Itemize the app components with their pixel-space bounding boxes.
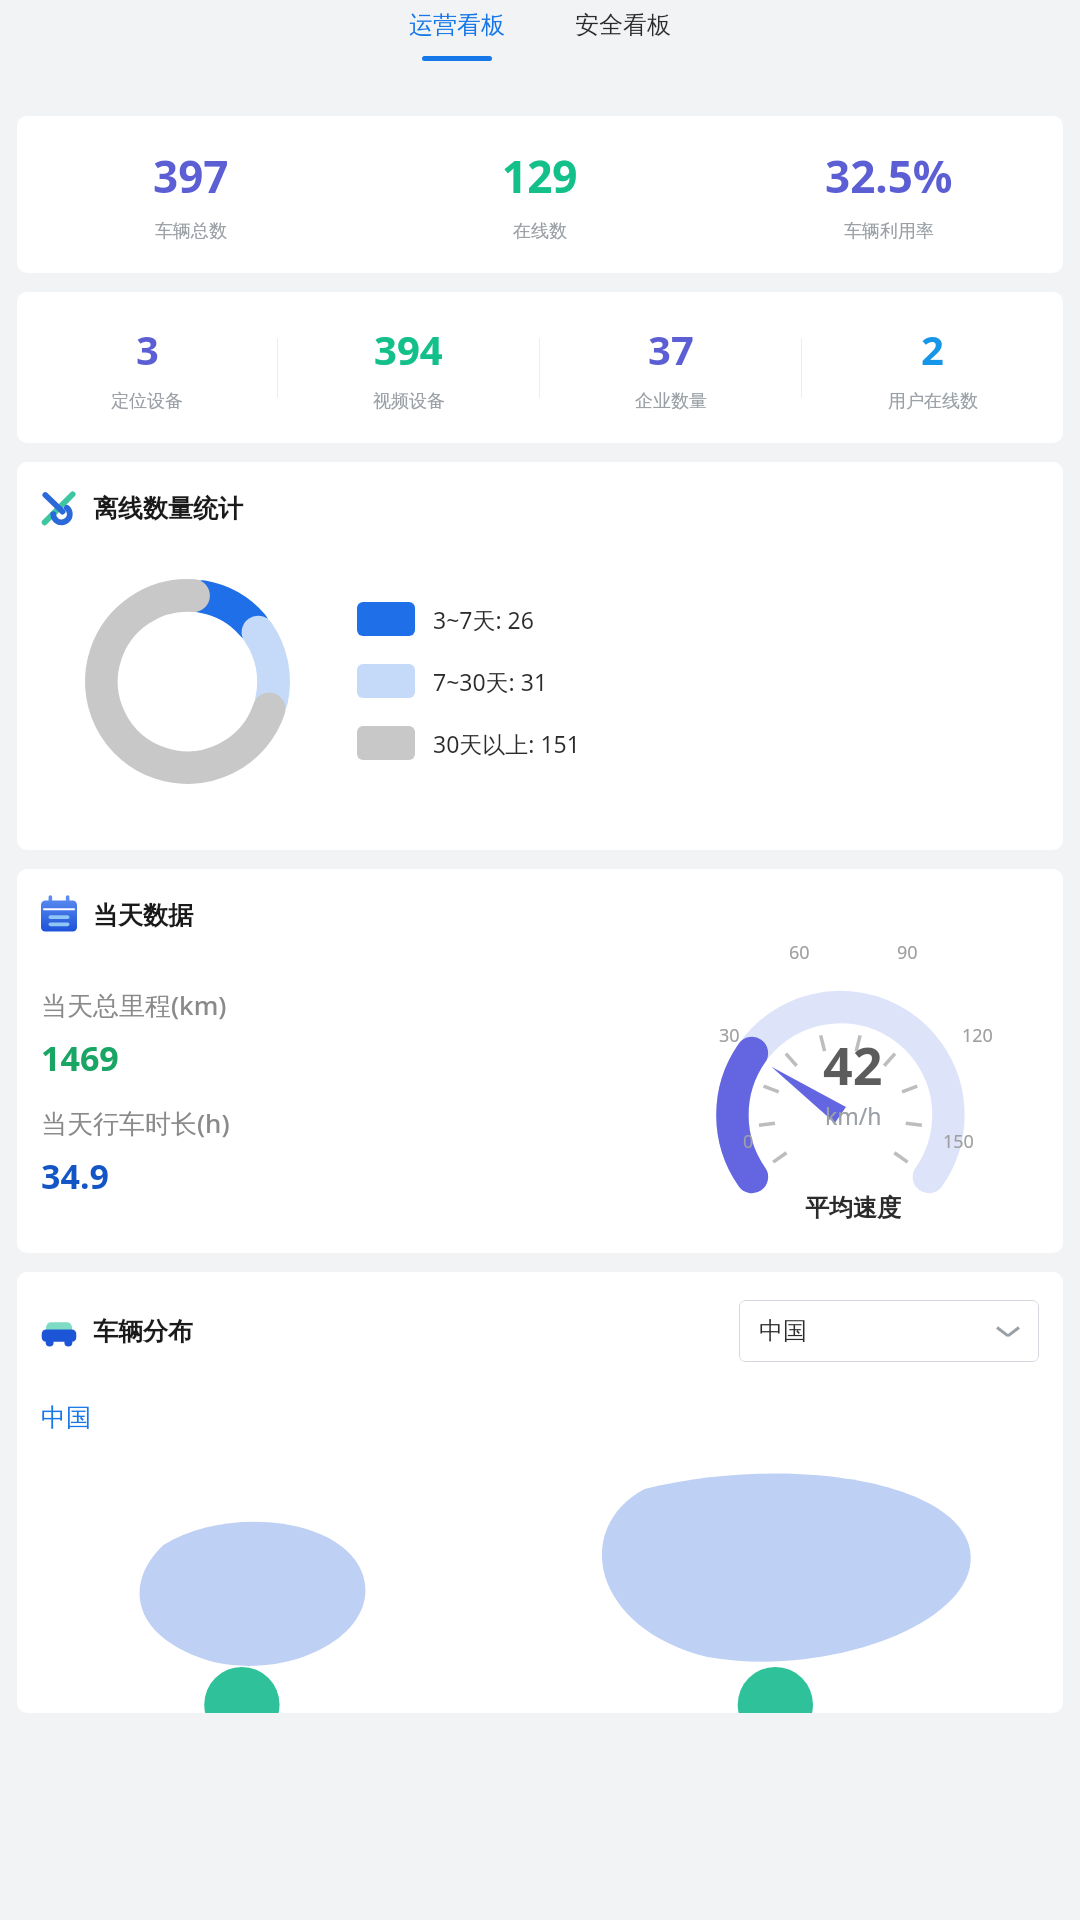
staticText: 中国 [759,1316,807,1346]
staticText: 2 [921,322,944,376]
button[interactable]: 3~7天: 26 [357,602,534,636]
staticText: 定位设备 [111,390,183,413]
staticText: 32.5% [825,146,953,206]
staticText: 42 [823,1029,883,1100]
staticText: 企业数量 [635,390,707,413]
staticText: 离线数量统计 [93,493,243,524]
staticText: 129 [502,146,578,206]
staticText: 在线数 [513,220,567,243]
staticText: 90 [897,940,918,965]
button[interactable]: 3 [17,322,277,413]
staticText: 安全看板 [575,10,671,40]
button[interactable]: 中国 [739,1300,1039,1362]
button[interactable]: 394 [278,322,539,413]
staticText: 60 [789,940,810,965]
button[interactable]: 129 [365,146,714,243]
staticText: 平均速度 [805,1193,901,1223]
staticText: 34.9 [41,1153,109,1199]
button[interactable]: 运营看板 [389,10,525,61]
staticText: 运营看板 [409,10,505,40]
other: Offline statistics [41,490,77,526]
staticText: 30天以上: 151 [433,728,580,759]
button[interactable]: 2 [802,322,1063,413]
staticText: 车辆利用率 [844,220,934,243]
other: Today data [41,897,77,933]
button[interactable]: 37 [540,322,801,413]
other: Vehicle distribution [41,1313,77,1349]
staticText: 7~30天: 31 [433,666,548,697]
staticText: 中国 [41,1402,91,1433]
staticText: 车辆总数 [155,220,227,243]
staticText: 30 [719,1023,740,1048]
staticText: 当天总里程(km) [41,987,227,1023]
staticText: 3 [136,322,159,376]
button[interactable]: 7~30天: 31 [357,664,548,698]
staticText: km/h [825,1100,882,1131]
staticText: 120 [962,1023,993,1048]
staticText: 1469 [41,1035,119,1081]
staticText: 视频设备 [373,390,445,413]
button[interactable]: 安全看板 [555,10,691,40]
button[interactable]: 32.5% [714,146,1063,243]
staticText: 0 [743,1129,754,1154]
staticText: 车辆分布 [93,1316,193,1347]
staticText: 当天数据 [93,900,193,931]
staticText: 397 [153,146,229,206]
staticText: 37 [648,322,694,376]
staticText: 当天行车时长(h) [41,1105,230,1141]
staticText: 3~7天: 26 [433,604,534,635]
button[interactable]: 397 [17,146,365,243]
staticText: 394 [374,322,443,376]
staticText: 用户在线数 [888,390,978,413]
button[interactable]: 30天以上: 151 [357,726,580,760]
staticText: 150 [943,1129,974,1154]
